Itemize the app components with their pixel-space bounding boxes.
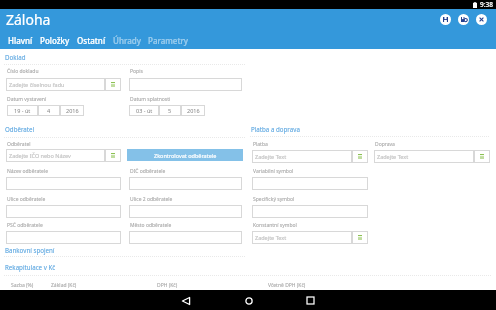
staticText: Zadejte IČO nebo Název <box>9 152 71 159</box>
staticText: Parametry <box>148 35 189 46</box>
staticText: Odběratel <box>7 141 31 148</box>
staticText: Položky <box>40 35 70 46</box>
button[interactable]: Zadejte Text <box>252 150 368 163</box>
staticText: Doprava <box>375 141 395 148</box>
staticText: Specifický symbol <box>253 196 295 203</box>
button[interactable]: Zkontrolovat odběratele <box>127 149 243 161</box>
staticText: Platba <box>253 141 268 148</box>
staticText: Hlavní <box>8 35 33 46</box>
staticText: 4 <box>47 107 51 114</box>
button[interactable]: Parametry <box>148 35 189 46</box>
button[interactable]: Close <box>476 14 487 25</box>
staticText: Ulice 2 odběratele <box>130 196 173 203</box>
staticText: Zadejte Text <box>255 234 287 241</box>
button[interactable] <box>6 205 121 218</box>
button[interactable]: Zadejte IČO nebo Název <box>6 149 121 162</box>
staticText: Číslo dokladu <box>7 68 39 75</box>
staticText: Zadejte Text <box>255 153 287 160</box>
staticText: Variabilní symbol <box>253 168 294 175</box>
button[interactable]: Zadejte Text <box>374 150 490 163</box>
button[interactable]: Položky <box>40 35 70 46</box>
button[interactable] <box>129 205 242 218</box>
staticText: Ostatní <box>77 35 106 46</box>
staticText: Zadejte číselnou řadu <box>9 81 65 88</box>
staticText: Datum vystavení <box>7 96 47 103</box>
button[interactable]: Zadejte číselnou řadu <box>6 78 121 91</box>
staticText: 03 - út <box>136 107 153 114</box>
button[interactable] <box>129 231 242 244</box>
staticText: Platba a doprava <box>251 125 300 133</box>
staticText: Základ (Kč) <box>51 282 77 289</box>
staticText: Včetně DPH (Kč) <box>268 282 306 289</box>
button[interactable]: 2016 <box>181 105 205 116</box>
staticText: Konstantní symbol <box>253 222 297 229</box>
staticText: Záloha <box>6 10 51 29</box>
button[interactable] <box>6 177 121 190</box>
staticText: DPH (Kč) <box>157 282 178 289</box>
button[interactable]: Back <box>171 291 201 310</box>
button[interactable]: 03 - út <box>129 105 159 116</box>
staticText: Doklad <box>5 53 26 61</box>
staticText: Zadejte Text <box>377 153 409 160</box>
button[interactable]: 2016 <box>60 105 84 116</box>
button[interactable] <box>6 231 121 244</box>
staticText: 9:38 <box>480 0 493 9</box>
staticText: Ulice odběratele <box>7 196 46 203</box>
staticText: Popis <box>130 68 143 75</box>
button[interactable]: Home <box>234 291 264 310</box>
staticText: Rekapitulace v Kč <box>5 263 56 271</box>
staticText: 2016 <box>187 107 200 114</box>
staticText: Zkontrolovat odběratele <box>154 152 217 159</box>
button[interactable]: 4 <box>38 105 60 116</box>
button[interactable]: Hlavní <box>8 35 33 46</box>
button[interactable] <box>129 177 242 190</box>
button[interactable]: 19 - út <box>7 105 38 116</box>
button[interactable] <box>252 177 368 190</box>
staticText: Město odběratele <box>130 222 172 229</box>
button[interactable]: Úhrady <box>113 35 141 46</box>
staticText: DIČ odběratele <box>130 168 166 175</box>
button[interactable] <box>252 205 368 218</box>
staticText: Název odběratele <box>7 168 49 175</box>
staticText: Bankovní spojení <box>5 246 55 254</box>
button[interactable]: Recents <box>295 291 325 310</box>
staticText: Datum splatnosti <box>130 96 171 103</box>
staticText: Sazba (%) <box>11 282 34 289</box>
button[interactable]: Zadejte Text <box>252 231 368 244</box>
button[interactable]: Ostatní <box>77 35 106 46</box>
button[interactable] <box>129 78 242 91</box>
staticText: 2016 <box>66 107 79 114</box>
staticText: 5 <box>168 107 172 114</box>
staticText: Odběratel <box>5 125 35 133</box>
button[interactable]: 5 <box>159 105 181 116</box>
button[interactable]: Save as new <box>458 14 469 25</box>
button[interactable]: Save <box>440 14 451 25</box>
staticText: 19 - út <box>14 107 31 114</box>
staticText: Úhrady <box>113 35 141 46</box>
staticText: PSČ odběratele <box>7 222 43 229</box>
